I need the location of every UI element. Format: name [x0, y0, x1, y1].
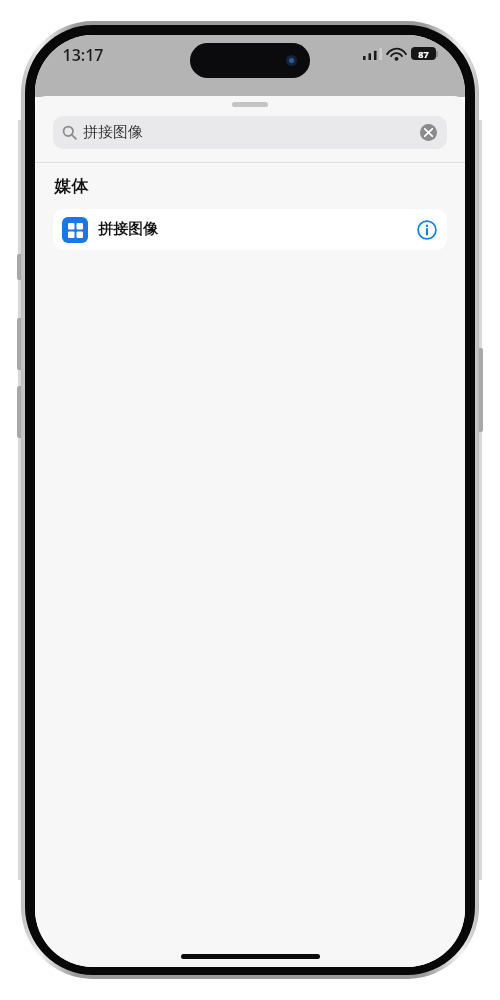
- other: Silence switch: [17, 254, 23, 280]
- other: Volume down: [17, 386, 23, 438]
- button[interactable]: 拼接图像: [53, 209, 447, 250]
- staticText: 媒体: [54, 176, 88, 197]
- staticText: 13:17: [62, 44, 104, 66]
- staticText: 87: [418, 48, 429, 60]
- other: Power: [477, 348, 483, 432]
- staticText: 拼接图像: [83, 123, 143, 142]
- staticText: 拼接图像: [98, 220, 158, 239]
- button[interactable]: 拼接图像: [53, 116, 447, 149]
- button[interactable]: Clear search: [419, 123, 438, 142]
- other: Volume up: [17, 318, 23, 370]
- button[interactable]: Info: [416, 219, 438, 241]
